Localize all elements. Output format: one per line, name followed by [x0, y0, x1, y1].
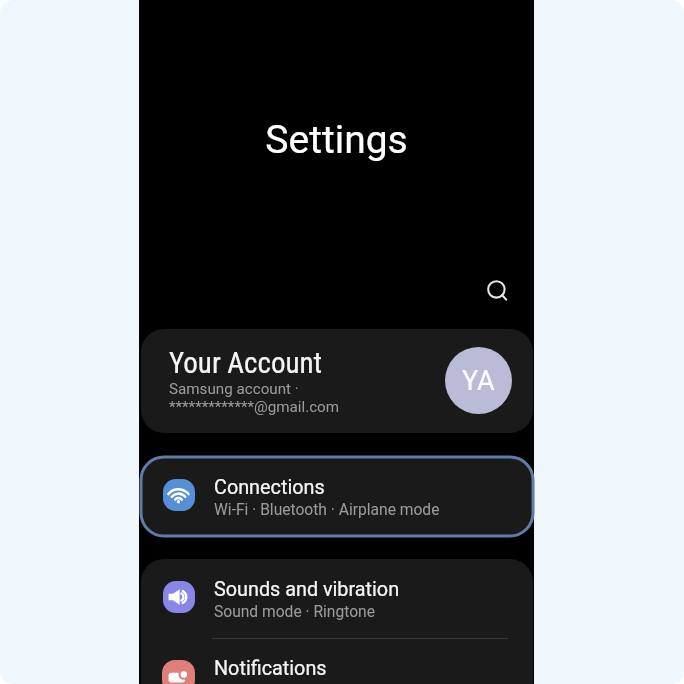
button[interactable]: Your Account — [141, 329, 533, 433]
staticText: YA — [462, 365, 495, 397]
staticText: Samsung account · — [169, 380, 299, 398]
staticText: Sounds and vibration — [214, 578, 400, 601]
staticText: *************@gmail.com — [169, 398, 340, 416]
staticText: Connections — [214, 476, 325, 499]
button[interactable]: Connections — [141, 457, 533, 536]
staticText: Wi-Fi · Bluetooth · Airplane mode — [214, 501, 440, 519]
staticText: Settings — [139, 117, 534, 163]
staticText: Your Account — [169, 346, 323, 380]
staticText: Notifications — [214, 657, 327, 680]
button[interactable]: Notifications — [141, 640, 533, 684]
staticText: Sound mode · Ringtone — [214, 603, 375, 621]
button[interactable]: Search — [475, 268, 519, 312]
button[interactable]: Sounds and vibration — [141, 559, 533, 638]
